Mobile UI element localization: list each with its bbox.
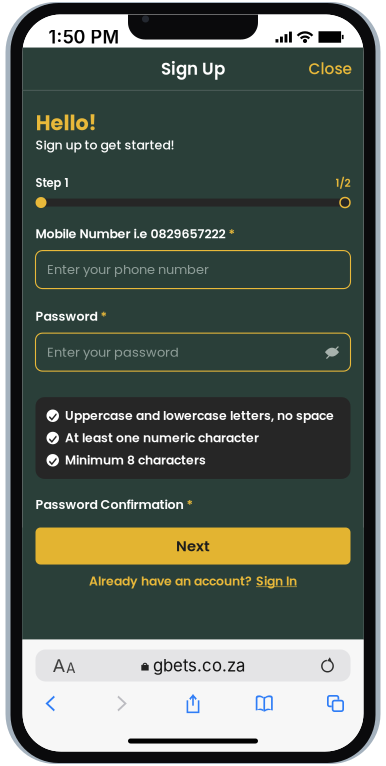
- staticText: Uppercase and lowercase letters, no spac…: [65, 407, 334, 424]
- staticText: A: [66, 660, 76, 677]
- staticText: At least one numeric character: [65, 429, 259, 447]
- staticText: Password: [35, 308, 97, 325]
- button[interactable]: Back: [28, 687, 72, 719]
- staticText: Sign up to get started!: [35, 136, 174, 154]
- staticText: *: [228, 225, 234, 242]
- button[interactable]: Reload: [313, 651, 341, 679]
- staticText: Enter your phone number: [47, 260, 209, 279]
- staticText: 1:50 PM: [48, 26, 119, 48]
- staticText: 1/2: [335, 175, 350, 190]
- button[interactable]: Tabs: [313, 687, 357, 719]
- staticText: *: [186, 496, 192, 513]
- button[interactable]: Forward: [100, 687, 144, 719]
- button[interactable]: Next: [35, 527, 350, 564]
- button[interactable]: Bookmarks: [242, 687, 286, 719]
- staticText: Next: [176, 536, 210, 556]
- staticText: Step 1: [35, 175, 68, 191]
- staticText: Already have an account?: [89, 572, 252, 590]
- button[interactable]: Page settings: [44, 648, 84, 683]
- staticText: Sign In: [256, 572, 297, 590]
- staticText: Mobile Number i.e 0829657222: [35, 225, 225, 242]
- staticText: *: [100, 308, 106, 325]
- staticText: A: [52, 654, 65, 677]
- button[interactable]: Share: [171, 687, 215, 719]
- staticText: Enter your password: [47, 343, 179, 361]
- staticText: gbets.co.za: [153, 655, 245, 676]
- button[interactable]: Close: [299, 50, 360, 88]
- staticText: Hello!: [35, 108, 96, 137]
- staticText: Sign Up: [161, 57, 225, 81]
- button[interactable]: Already have an account?: [83, 564, 303, 596]
- staticText: Password Confirmation: [35, 496, 183, 513]
- staticText: Close: [308, 58, 351, 80]
- staticText: Minimum 8 characters: [65, 452, 206, 469]
